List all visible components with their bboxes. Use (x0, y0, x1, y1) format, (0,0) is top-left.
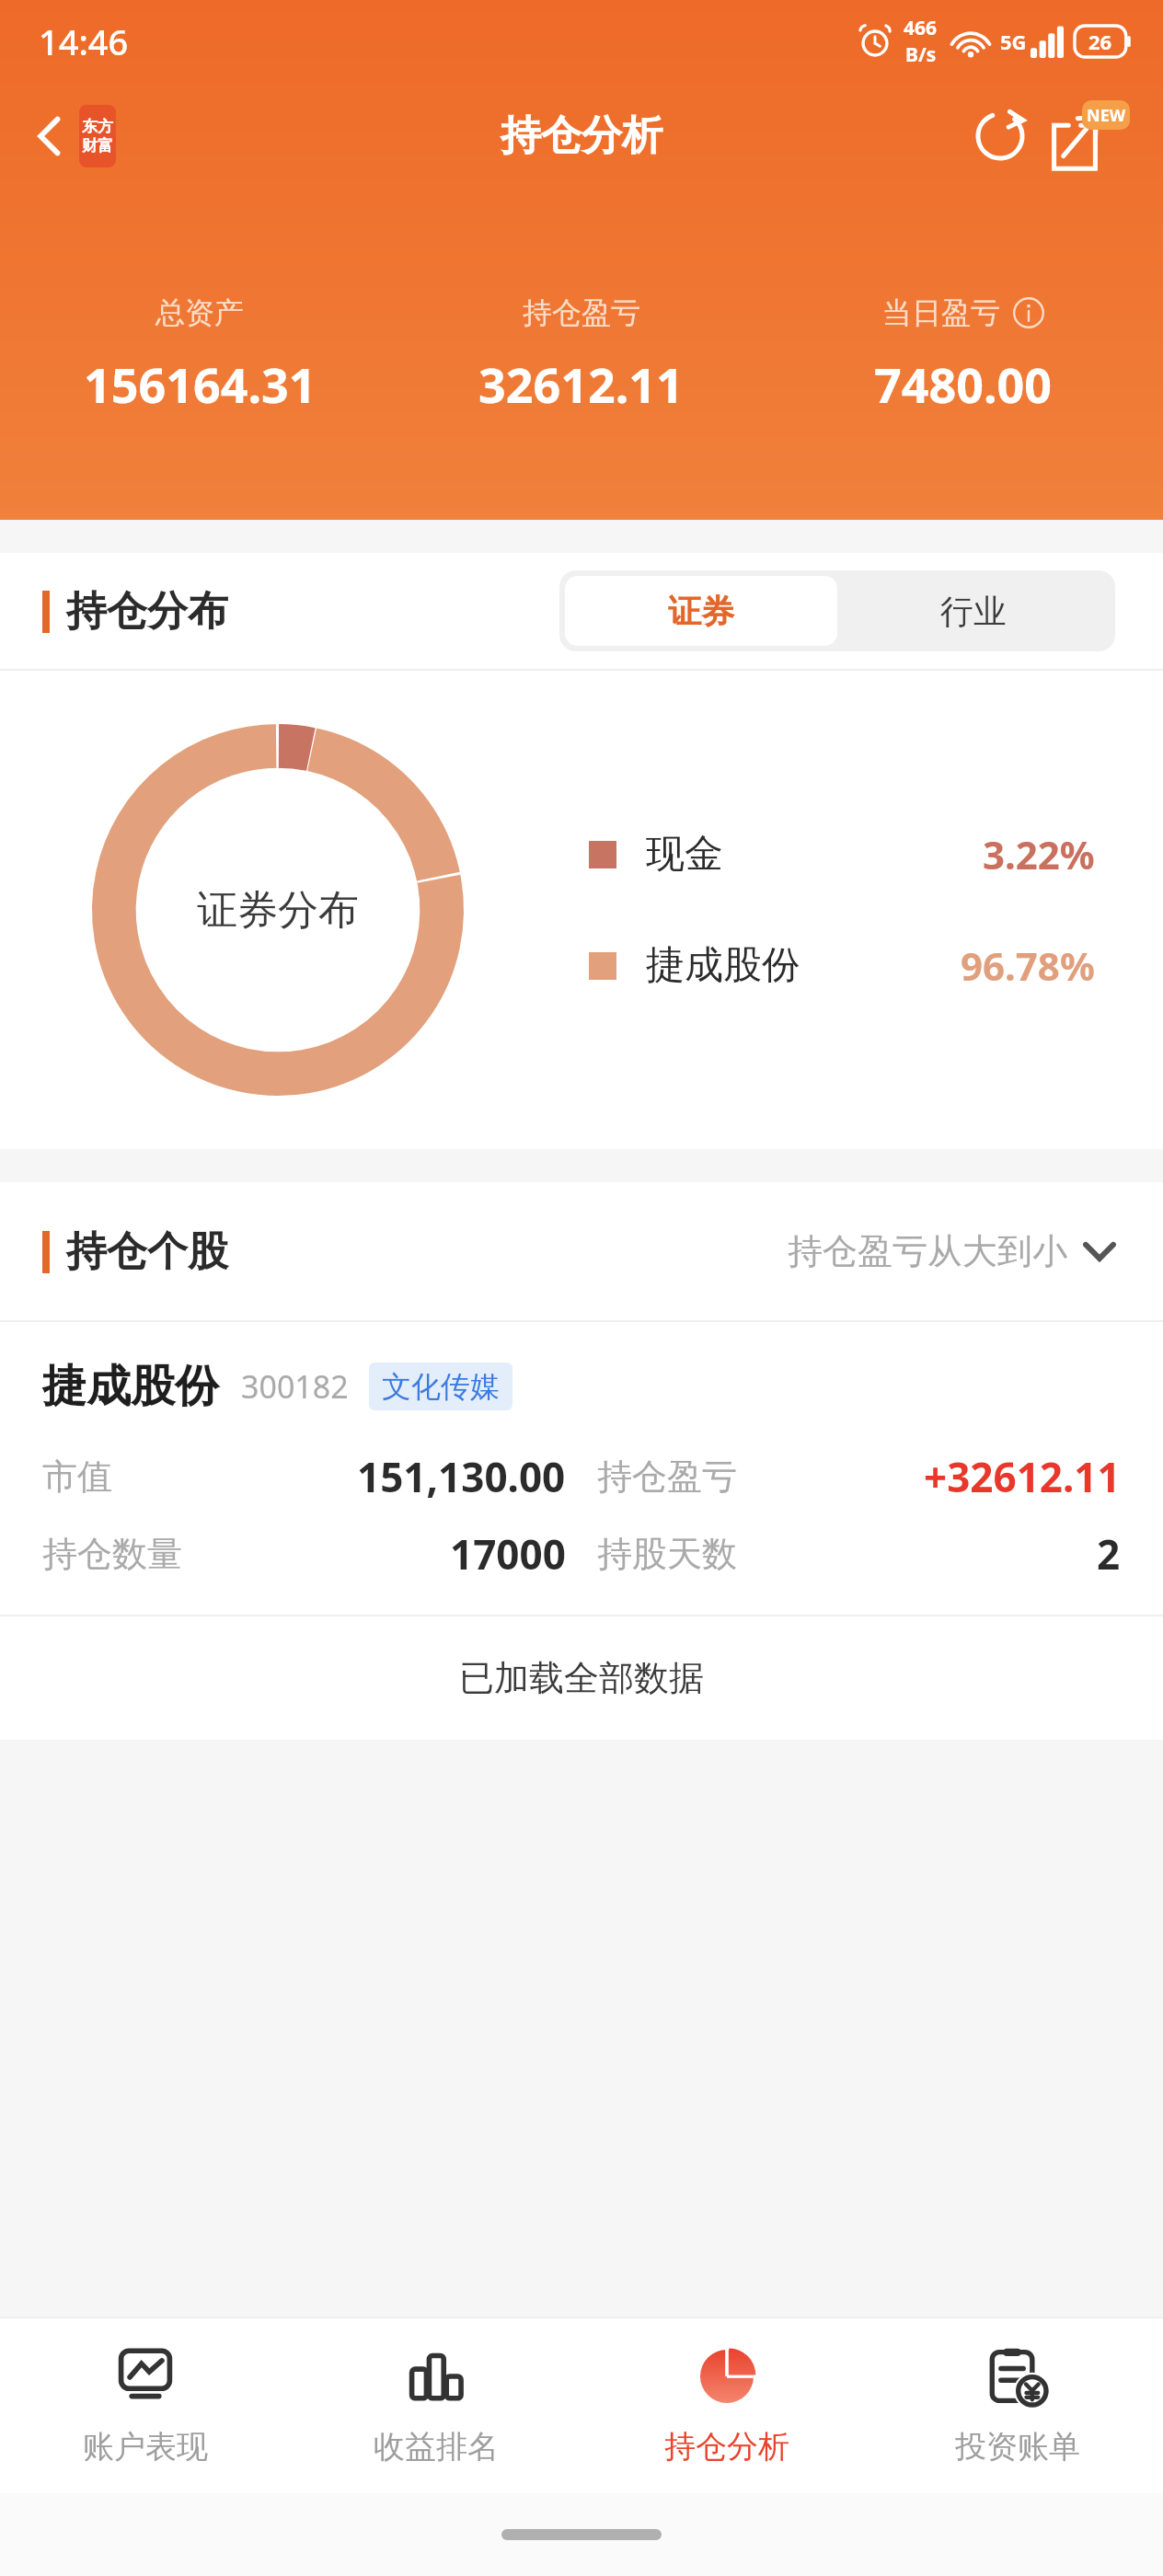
staticText: 捷成股份 (646, 941, 800, 990)
staticText: B/s (905, 41, 937, 68)
button[interactable]: 捷成股份 (589, 939, 1104, 992)
staticText: 14:46 (39, 17, 129, 65)
staticText: 5G (1000, 28, 1027, 55)
button[interactable]: 收益排名 (291, 2318, 581, 2493)
staticText: 投资账单 (955, 2427, 1080, 2467)
staticText: 持仓分析 (664, 2427, 789, 2467)
staticText: NEW (1087, 104, 1126, 127)
staticText: 17000 (450, 1526, 566, 1581)
staticText: 26 (1088, 28, 1112, 55)
staticText: 当日盈亏 (882, 294, 1000, 331)
button[interactable]: 现金 (589, 828, 1104, 880)
staticText: 300182 (241, 1365, 349, 1408)
button[interactable]: 持仓盈亏从大到小 (777, 1216, 1126, 1286)
staticText: 东方 (82, 117, 113, 136)
staticText: 证券 (668, 591, 734, 632)
staticText: 151,130.00 (357, 1449, 566, 1504)
staticText: 32612.11 (478, 351, 684, 417)
button[interactable]: 刷新 (966, 102, 1034, 170)
button[interactable]: 投资账单 (872, 2318, 1163, 2493)
button[interactable]: 持仓分析 (581, 2318, 872, 2493)
button[interactable]: 捷成股份 (0, 1322, 1163, 1615)
staticText: 证券分布 (197, 885, 359, 936)
staticText: 持仓盈亏 (597, 1455, 737, 1499)
button[interactable]: 返回 东方财富 (26, 96, 123, 177)
staticText: 文化传媒 (382, 1368, 500, 1405)
staticText: 持仓个股 (66, 1226, 228, 1277)
staticText: 总资产 (155, 294, 244, 331)
staticText: 7480.00 (874, 351, 1053, 417)
staticText: 持股天数 (597, 1532, 737, 1576)
button[interactable]: 账户表现 (0, 2318, 291, 2493)
staticText: 3.22% (983, 828, 1095, 880)
staticText: +32612.11 (924, 1449, 1121, 1504)
button[interactable]: 分享 (1043, 95, 1135, 178)
button[interactable]: 说明 (1013, 297, 1044, 328)
staticText: 收益排名 (374, 2427, 499, 2467)
staticText: 市值 (42, 1455, 112, 1499)
staticText: 持仓盈亏 (523, 294, 640, 331)
staticText: 现金 (646, 830, 723, 879)
staticText: 156164.31 (84, 351, 317, 417)
staticText: 持仓盈亏从大到小 (788, 1229, 1067, 1273)
staticText: 466 (904, 15, 938, 41)
staticText: 2 (1097, 1526, 1121, 1581)
staticText: 账户表现 (83, 2427, 208, 2467)
staticText: 捷成股份 (42, 1359, 219, 1414)
staticText: 行业 (940, 591, 1007, 632)
staticText: 96.78% (961, 939, 1095, 992)
staticText: 持仓数量 (42, 1532, 182, 1576)
staticText: 持仓分析 (501, 110, 662, 161)
staticText: 持仓分布 (66, 586, 228, 637)
staticText: 财富 (82, 136, 113, 155)
staticText: 已加载全部数据 (459, 1656, 704, 1700)
button[interactable]: 证券 (565, 576, 837, 646)
button[interactable]: 行业 (837, 576, 1110, 646)
